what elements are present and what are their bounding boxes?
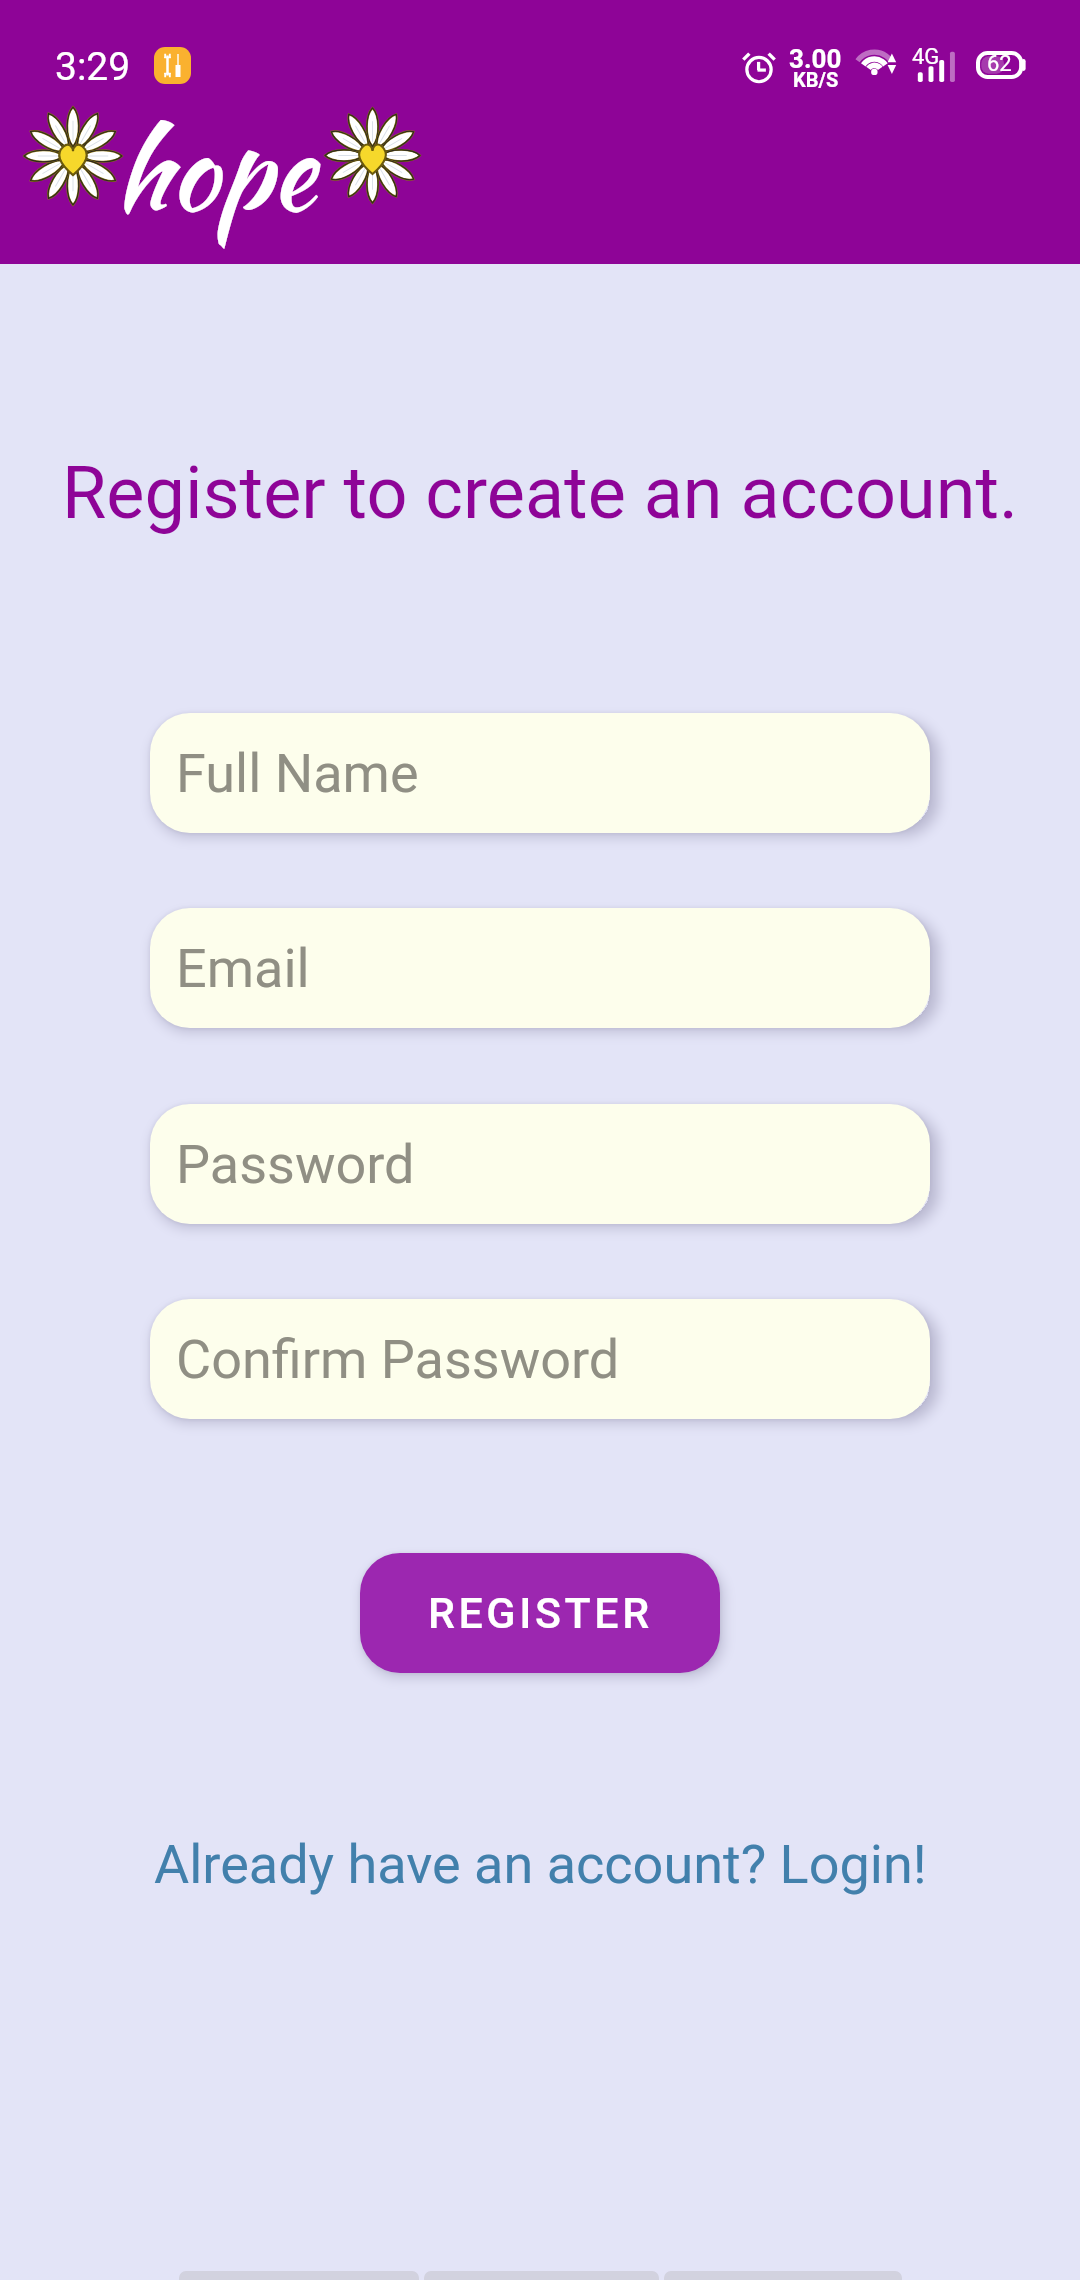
button[interactable]: REGISTER xyxy=(360,1553,720,1673)
staticText: Full Name xyxy=(176,742,419,805)
button[interactable]: Confirm Password xyxy=(150,1299,930,1419)
staticText: 3:29 xyxy=(55,44,131,90)
other: Battery 62 percent xyxy=(976,51,1027,79)
other: Alarm xyxy=(742,48,776,82)
other: Mobile signal xyxy=(911,46,958,84)
staticText: 3.00 xyxy=(789,44,842,74)
staticText: hope xyxy=(114,92,315,249)
staticText: 4G xyxy=(912,44,940,70)
button[interactable]: Email xyxy=(150,908,930,1028)
other: Wi-Fi xyxy=(855,44,900,78)
staticText: Password xyxy=(176,1133,415,1196)
staticText: REGISTER xyxy=(428,1588,653,1638)
staticText: 62 xyxy=(987,51,1012,77)
staticText: Confirm Password xyxy=(176,1328,620,1391)
button[interactable]: Already have an account? Login! xyxy=(0,1828,1080,1900)
staticText: Already have an account? Login! xyxy=(154,1833,927,1896)
staticText: Email xyxy=(176,937,310,1000)
button[interactable]: Full Name xyxy=(150,713,930,833)
staticText: Register to create an account. xyxy=(0,451,1080,535)
staticText: KB/S xyxy=(793,68,839,91)
button[interactable]: Password xyxy=(150,1104,930,1224)
other: Developer options xyxy=(154,47,191,84)
